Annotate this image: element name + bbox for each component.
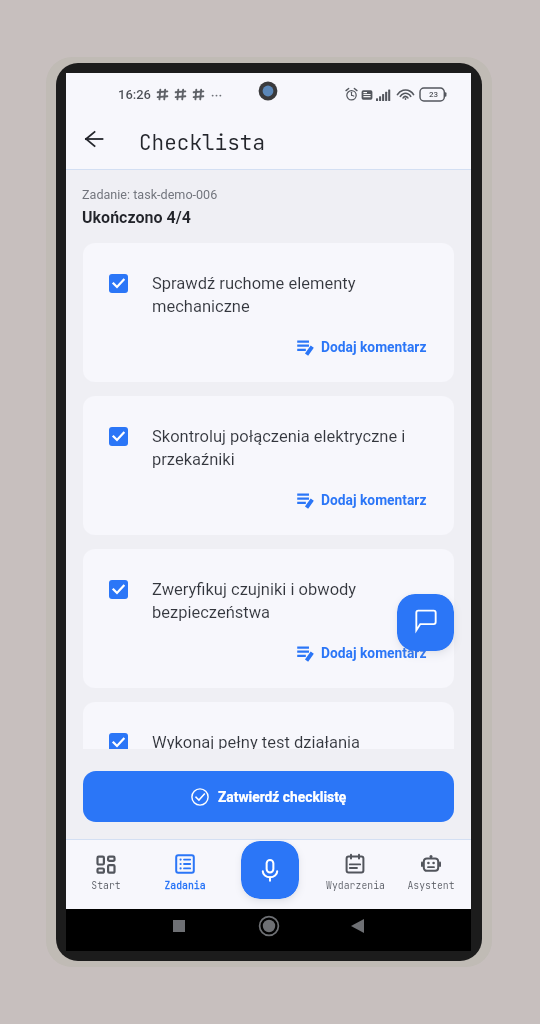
staticText: Dodaj komentarz <box>321 645 427 661</box>
button[interactable]: Wydarzenia <box>315 839 395 909</box>
button[interactable]: Start <box>66 839 146 909</box>
button[interactable]: Chat <box>397 594 454 651</box>
staticText: Zweryfikuj czujniki i obwody bezpieczeńs… <box>152 580 427 622</box>
staticText: Start <box>91 879 121 892</box>
staticText: Skontroluj połączenia elektryczne i prze… <box>152 427 427 469</box>
button[interactable]: Recents <box>162 909 196 943</box>
staticText: Zadania <box>164 879 206 892</box>
staticText: Sprawdź ruchome elementy mechaniczne <box>152 274 427 316</box>
staticText: Wykonaj pełny test działania <box>152 733 361 749</box>
button[interactable]: Dodaj komentarz <box>298 489 427 511</box>
button[interactable]: Back <box>340 909 374 943</box>
staticText: Dodaj komentarz <box>321 339 427 355</box>
button[interactable]: Zweryfikuj czujniki i obwody bezpieczeńs… <box>83 549 454 688</box>
staticText: 16:26 <box>118 87 152 102</box>
staticText: Asystent <box>407 879 455 892</box>
staticText: Ukończono 4/4 <box>82 208 191 227</box>
staticText: 23 <box>429 90 439 99</box>
button[interactable]: Dodaj komentarz <box>298 642 427 664</box>
button[interactable]: Asystent <box>391 839 471 909</box>
button[interactable]: Sprawdź ruchome elementy mechaniczne <box>83 243 454 382</box>
button[interactable]: Home <box>252 909 286 943</box>
staticText: Wydarzenia <box>326 879 385 892</box>
staticText: Zadanie: task-demo-006 <box>82 187 218 202</box>
button[interactable]: Voice assistant <box>241 841 299 899</box>
button[interactable]: Wykonaj pełny test działania <box>83 702 454 749</box>
button[interactable]: Zatwierdź checklistę <box>83 771 454 822</box>
button[interactable]: Skontroluj połączenia elektryczne i prze… <box>83 396 454 535</box>
button[interactable]: Back <box>77 122 111 156</box>
staticText: Zatwierdź checklistę <box>218 789 347 805</box>
staticText: Dodaj komentarz <box>321 492 427 508</box>
button[interactable]: Zadania <box>145 839 225 909</box>
staticText: Checklista <box>139 129 265 157</box>
button[interactable]: Dodaj komentarz <box>298 336 427 358</box>
